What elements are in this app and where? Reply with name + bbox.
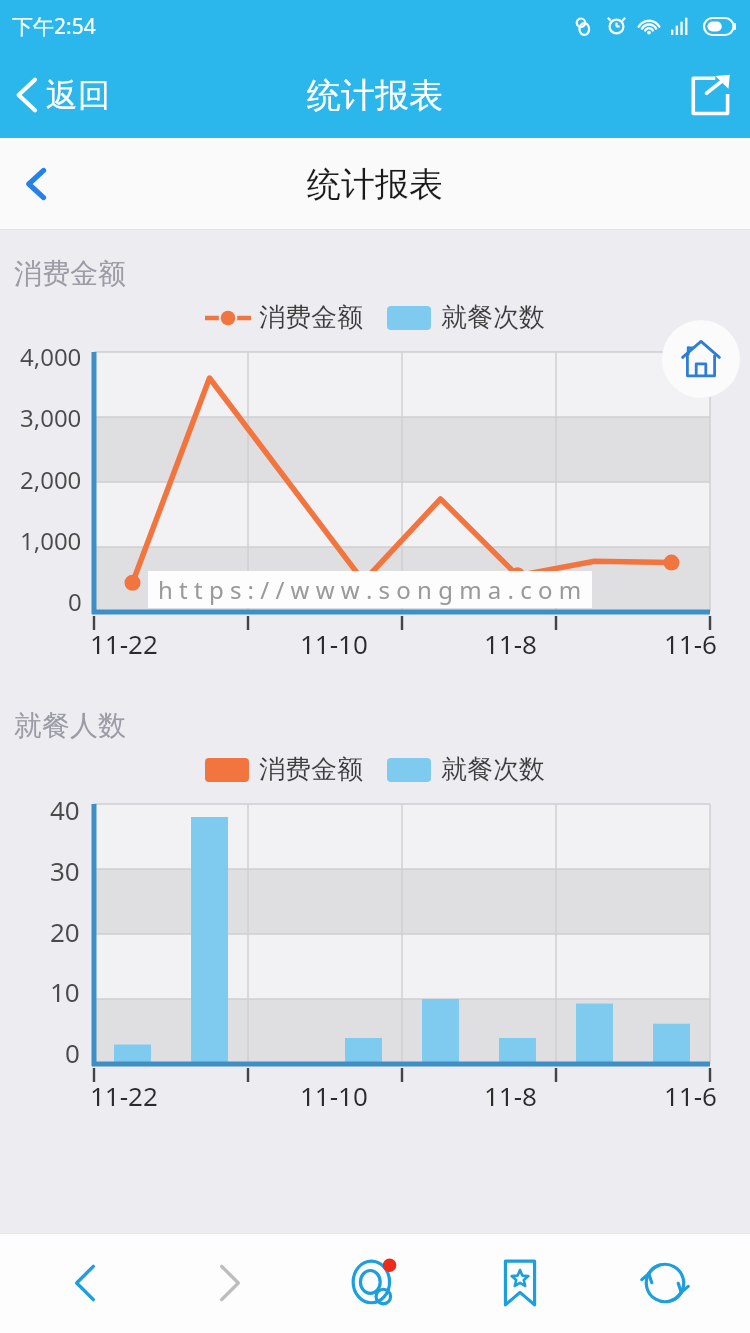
button[interactable]: Bookmark — [460, 1233, 580, 1333]
staticText: 0 — [68, 585, 82, 618]
staticText: 11-8 — [484, 1078, 537, 1113]
staticText: 40 — [50, 792, 80, 827]
staticText: 0 — [65, 1035, 80, 1070]
staticText: 下午2:54 — [12, 12, 96, 41]
staticText: 11-10 — [300, 1078, 368, 1113]
staticText: 3,000 — [20, 401, 82, 434]
staticText: 30 — [50, 853, 80, 888]
button[interactable]: Messages — [315, 1233, 435, 1333]
staticText: 11-6 — [664, 626, 717, 661]
staticText: 11-6 — [664, 1078, 717, 1113]
staticText: 4,000 — [20, 340, 82, 373]
staticText: 11-10 — [300, 626, 368, 661]
staticText: 消费金额 — [259, 753, 363, 786]
button[interactable]: Back — [25, 1233, 145, 1333]
staticText: 20 — [50, 914, 80, 949]
staticText: 11-22 — [90, 1078, 158, 1113]
staticText: 就餐次数 — [441, 753, 545, 786]
staticText: 11-22 — [90, 626, 158, 661]
staticText: 11-8 — [484, 626, 537, 661]
button[interactable]: Back — [0, 149, 72, 219]
staticText: 返回 — [46, 75, 110, 115]
staticText: 消费金额 — [259, 301, 363, 334]
button[interactable]: Refresh — [605, 1233, 725, 1333]
staticText: 统计报表 — [307, 163, 443, 206]
staticText: 消费金额 — [14, 256, 126, 291]
button[interactable]: Forward — [170, 1233, 290, 1333]
button[interactable]: Home — [662, 320, 740, 398]
staticText: 就餐次数 — [441, 301, 545, 334]
staticText: 2,000 — [20, 463, 82, 496]
button[interactable]: 返回 — [0, 65, 128, 125]
staticText: 统计报表 — [307, 74, 443, 117]
button[interactable]: Share — [670, 59, 750, 131]
staticText: 1,000 — [20, 524, 82, 557]
staticText: 就餐人数 — [14, 708, 126, 743]
staticText: h t t p s : / / w w w . s o n g m a . c … — [158, 573, 582, 606]
staticText: 10 — [50, 974, 80, 1009]
